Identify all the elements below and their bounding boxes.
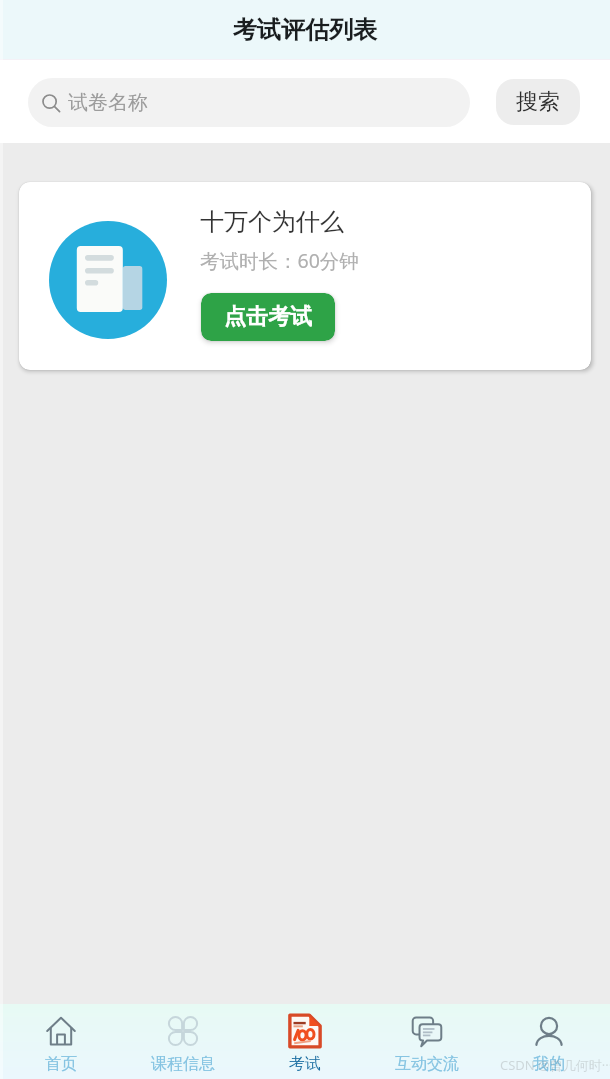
staticText: CSDN @曾几何时··· bbox=[500, 1056, 610, 1074]
button[interactable]: 搜索 bbox=[496, 79, 580, 125]
button[interactable]: 课程信息 bbox=[122, 1009, 244, 1074]
staticText: 搜索 bbox=[516, 88, 560, 116]
button[interactable]: 考试 bbox=[244, 1009, 366, 1074]
button[interactable]: 十万个为什么 bbox=[19, 182, 591, 370]
button[interactable]: 互动交流 bbox=[366, 1009, 488, 1074]
staticText: 十万个为什么 bbox=[200, 207, 344, 237]
button[interactable]: 我的 bbox=[488, 1009, 610, 1074]
button[interactable]: 点击考试 bbox=[201, 293, 335, 341]
staticText: 互动交流 bbox=[395, 1054, 459, 1074]
staticText: 首页 bbox=[45, 1054, 77, 1074]
other: 课程信息 bbox=[168, 1016, 198, 1046]
staticText: 考试 bbox=[289, 1054, 321, 1074]
other: 首页 bbox=[46, 1016, 76, 1046]
staticText: 考试评估列表 bbox=[233, 15, 377, 45]
staticText: 考试时长：60分钟 bbox=[200, 247, 359, 274]
other: 考试 bbox=[287, 1013, 323, 1049]
button[interactable]: 试卷名称 bbox=[28, 78, 470, 127]
other: 我的 bbox=[534, 1016, 564, 1046]
other: 互动交流 bbox=[410, 1014, 444, 1048]
staticText: 我的 bbox=[533, 1054, 565, 1074]
staticText: 点击考试 bbox=[224, 303, 312, 331]
staticText: 课程信息 bbox=[151, 1054, 215, 1074]
button[interactable]: 首页 bbox=[0, 1009, 122, 1074]
staticText: 试卷名称 bbox=[68, 90, 148, 115]
